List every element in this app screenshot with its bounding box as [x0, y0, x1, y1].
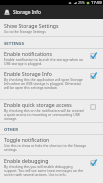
button[interactable]: Enable debugging — [0, 156, 103, 183]
staticText: By checking this the application will op… — [4, 77, 86, 90]
staticText: Enable debugging — [4, 157, 49, 164]
staticText: 17:59 — [91, 0, 102, 5]
staticText: 25% — [78, 0, 85, 5]
staticText: SETTINGS — [4, 41, 24, 47]
button[interactable]: Enable Storage Info — [0, 69, 103, 99]
staticText: Show Storage Settings — [4, 22, 59, 29]
button[interactable]: Toggle notification — [0, 135, 103, 155]
button[interactable]: Toggle setting — [90, 103, 97, 110]
staticText: Storage Info — [13, 9, 41, 16]
staticText: Use this to show or hide the shortcut to… — [4, 143, 97, 152]
button[interactable]: Toggle setting — [90, 52, 97, 59]
staticText: Enable notification to launch the storag… — [4, 57, 86, 66]
button[interactable]: Toggle setting — [90, 72, 97, 79]
staticText: Enable notifications — [4, 50, 52, 57]
staticText: Toggle notification — [4, 136, 50, 143]
other: Storage Info — [4, 9, 10, 15]
staticText: Go to the Storage Settings — [4, 29, 46, 34]
staticText: Enable quick storage access — [4, 101, 72, 108]
staticText: By checking this you will enable debuggi… — [4, 164, 86, 177]
button[interactable]: Toggle setting — [90, 159, 97, 166]
staticText: Enable Storage Info — [4, 70, 52, 77]
button[interactable]: Storage Info — [0, 5, 103, 19]
button[interactable]: Enable quick storage access — [0, 100, 103, 122]
button[interactable]: Show Storage Settings — [0, 19, 103, 36]
button[interactable]: Enable notifications — [0, 49, 103, 68]
staticText: OTHER — [4, 127, 18, 133]
staticText: By checking this on the notification wil… — [4, 108, 86, 121]
